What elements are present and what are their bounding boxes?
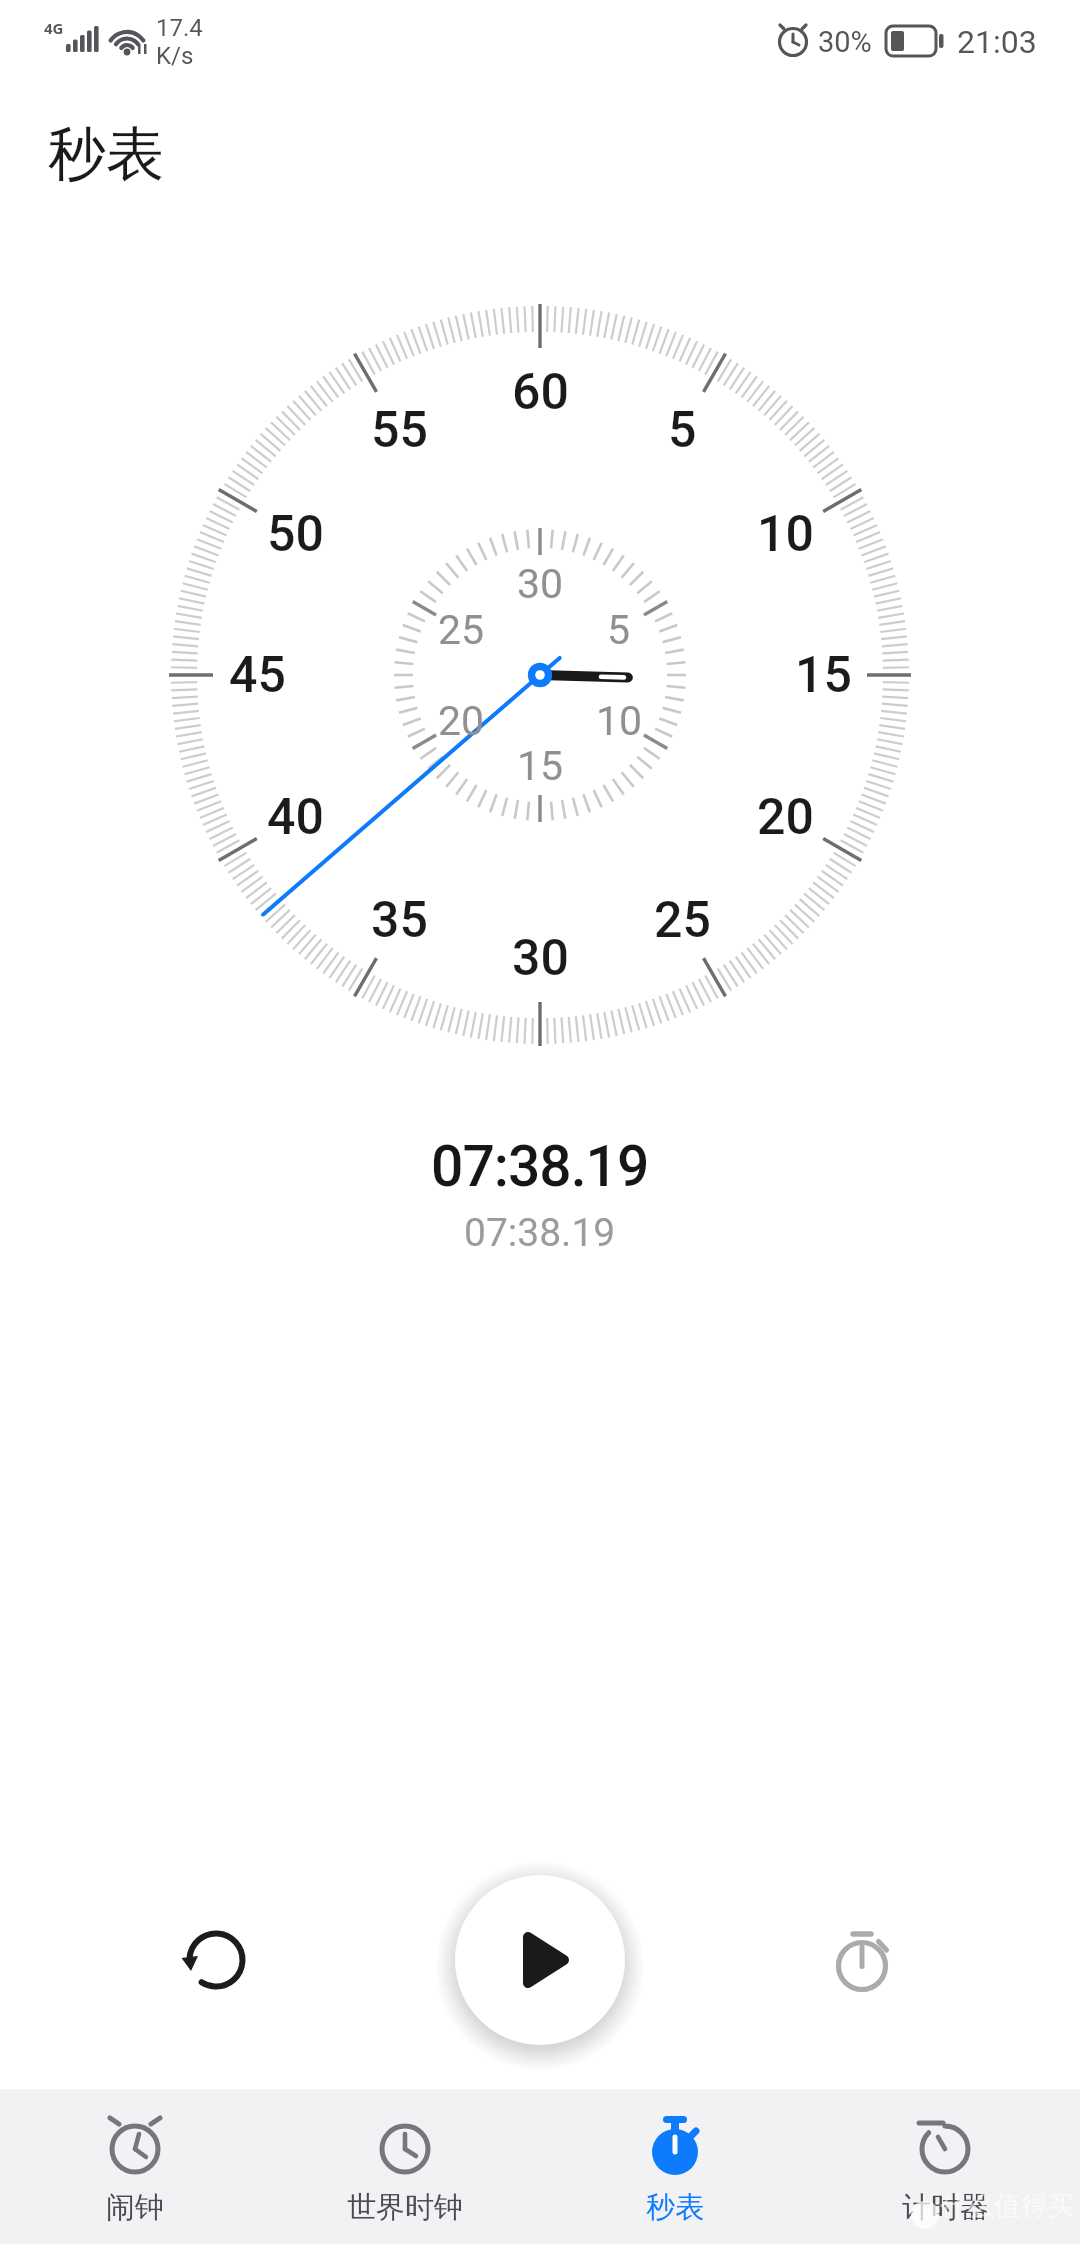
staticText: 秒表 <box>646 2189 704 2226</box>
staticText: 10 <box>596 697 643 745</box>
staticText: 计时器 <box>902 2189 989 2226</box>
staticText: 4G <box>44 18 64 38</box>
staticText: 5 <box>668 401 697 460</box>
staticText: 什么值得买 <box>940 2189 1075 2223</box>
staticText: 40 <box>267 788 324 847</box>
button[interactable] <box>455 1875 625 2045</box>
staticText: 35 <box>371 891 428 950</box>
staticText: 45 <box>229 646 286 705</box>
staticText: K/s <box>156 42 194 70</box>
button[interactable] <box>171 1915 261 2005</box>
staticText: 20 <box>757 788 814 847</box>
staticText: 21:03 <box>957 23 1037 61</box>
staticText: 20 <box>438 697 485 745</box>
staticText: 5 <box>607 606 631 654</box>
staticText: 30% <box>818 25 872 59</box>
staticText: 世界时钟 <box>347 2189 463 2226</box>
staticText: 07:38.19 <box>431 1133 649 1200</box>
button[interactable] <box>817 1915 907 2005</box>
staticText: 闹钟 <box>106 2189 164 2226</box>
staticText: 55 <box>371 401 428 460</box>
staticText: 07:38.19 <box>464 1210 616 1256</box>
staticText: 17.4 <box>156 14 203 42</box>
staticText: 60 <box>512 363 569 422</box>
button[interactable]: 计时器 <box>810 2089 1080 2244</box>
button[interactable]: 世界时钟 <box>270 2089 540 2244</box>
staticText: 50 <box>267 505 324 564</box>
staticText: 25 <box>654 891 711 950</box>
staticText: 15 <box>517 742 564 790</box>
staticText: 10 <box>757 505 814 564</box>
staticText: 秒表 <box>48 118 164 191</box>
button[interactable]: 秒表 <box>540 2089 810 2244</box>
staticText: 30 <box>512 929 569 988</box>
staticText: 30 <box>517 560 564 608</box>
button[interactable]: 闹钟 <box>0 2089 270 2244</box>
staticText: 25 <box>438 606 485 654</box>
staticText: 15 <box>795 646 852 705</box>
